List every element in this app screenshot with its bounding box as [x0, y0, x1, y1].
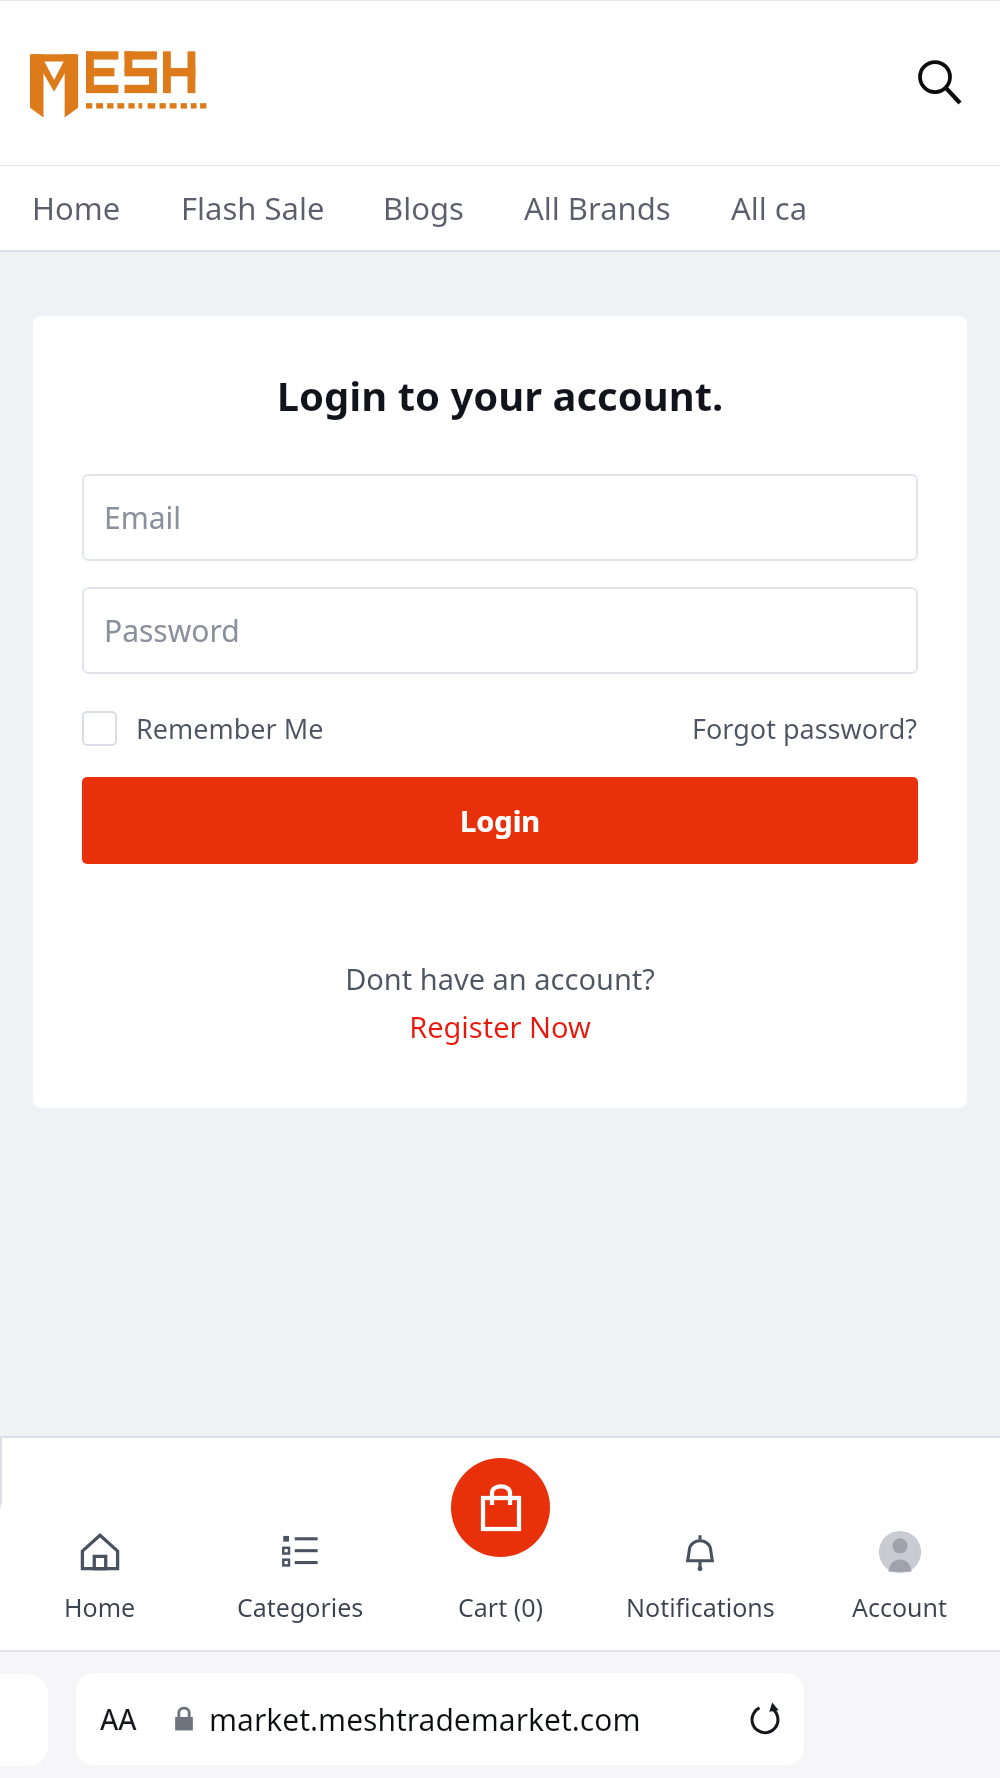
button[interactable]: Remember Me [82, 710, 324, 747]
button[interactable]: All Brands [510, 175, 685, 241]
button[interactable]: Account [800, 1490, 1000, 1650]
staticText: Password [104, 610, 240, 651]
staticText: All Brands [524, 187, 671, 229]
staticText: Categories [237, 1590, 364, 1624]
button[interactable]: Categories [200, 1490, 400, 1650]
button[interactable]: Notifications [600, 1490, 800, 1650]
staticText: Flash Sale [181, 187, 325, 229]
button[interactable]: Cart [451, 1458, 550, 1557]
button[interactable]: Reload [740, 1694, 790, 1744]
button[interactable]: Register Now [33, 1007, 967, 1046]
button[interactable]: Flash Sale [167, 175, 339, 241]
staticText: Account [852, 1590, 948, 1624]
staticText: Home [32, 187, 121, 229]
button[interactable]: All ca [717, 175, 822, 241]
button[interactable]: Mesh Trade Market home [30, 47, 205, 119]
button[interactable]: Blogs [369, 175, 478, 241]
staticText: Blogs [383, 187, 464, 229]
button[interactable]: Email [82, 474, 918, 561]
button[interactable]: Password [82, 587, 918, 674]
staticText: market.meshtrademarket.com [209, 1699, 641, 1740]
staticText: Login [460, 801, 541, 840]
staticText: Email [104, 497, 182, 538]
staticText: Cart (0) [458, 1590, 543, 1624]
button[interactable]: Forgot password? [692, 710, 918, 747]
button[interactable]: AA [76, 1673, 804, 1765]
staticText: Dont have an account? [33, 959, 967, 998]
staticText: AA [100, 1700, 137, 1738]
button[interactable]: Login [82, 777, 918, 864]
staticText: Register Now [33, 1007, 967, 1046]
staticText: Notifications [626, 1590, 775, 1624]
staticText: Forgot password? [692, 710, 918, 747]
button[interactable]: Search [906, 49, 974, 117]
button[interactable]: Home [0, 1490, 200, 1650]
button[interactable]: Cart (0) [400, 1490, 600, 1650]
staticText: Login to your account. [33, 368, 967, 422]
staticText: Home [64, 1590, 136, 1624]
button[interactable]: Home [18, 175, 135, 241]
staticText: All ca [731, 187, 808, 229]
staticText: Remember Me [136, 710, 324, 747]
